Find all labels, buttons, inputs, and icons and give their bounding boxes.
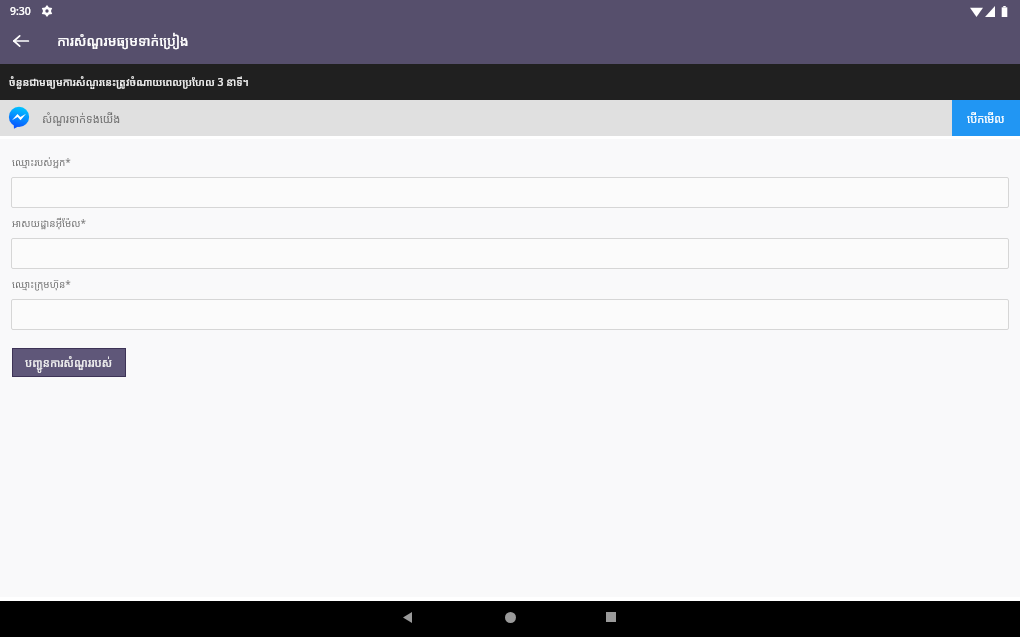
staticText: 9:30	[10, 4, 31, 18]
button[interactable]	[11, 177, 1009, 208]
staticText: ឈ្មោះរបស់អ្នក*	[12, 155, 71, 169]
staticText: ឈ្មោះក្រុមហ៊ុន*	[12, 277, 71, 291]
button[interactable]: បើកមើល	[952, 100, 1020, 136]
button[interactable]: Navigate back	[0, 20, 42, 62]
button[interactable]: បញ្ជូនការសំណួររបស់	[12, 348, 126, 377]
button[interactable]: Back	[377, 599, 437, 635]
button[interactable]	[11, 238, 1009, 269]
staticText: បើកមើល	[967, 111, 1005, 126]
staticText: ចំនួនជាមធ្យមការសំណួរនេះត្រូវចំណាយពេលប្រហ…	[9, 75, 249, 89]
button[interactable]	[11, 299, 1009, 330]
button[interactable]: Recent apps	[581, 599, 641, 635]
staticText: សំណួរទាក់ទងយើង	[42, 111, 121, 126]
staticText: អាសយដ្ឋានអ៊ីម៉ែល*	[12, 216, 87, 230]
staticText: បញ្ជូនការសំណួររបស់	[25, 355, 113, 370]
button[interactable]: Home	[480, 599, 540, 635]
staticText: ការសំណួរមធ្យមទាក់ប្រៀង	[57, 32, 189, 50]
